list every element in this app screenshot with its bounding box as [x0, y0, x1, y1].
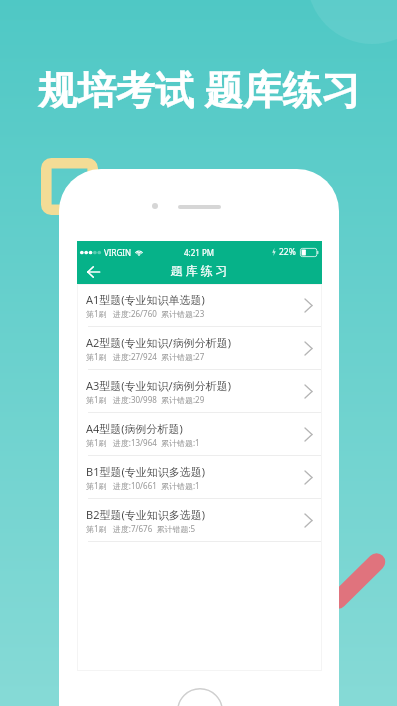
staticText: B1型题(专业知识多选题) [86, 464, 206, 479]
button[interactable]: B2型题(专业知识多选题) [77, 499, 322, 542]
staticText: A1型题(专业知识单选题) [86, 292, 205, 307]
button[interactable]: A1型题(专业知识单选题) [77, 284, 322, 327]
staticText: VIRGIN [104, 247, 132, 258]
staticText: B2型题(专业知识多选题) [86, 507, 206, 522]
button[interactable]: Back [83, 262, 103, 282]
staticText: A2型题(专业知识/病例分析题) [86, 335, 232, 350]
staticText: 第1刷 进度:7/676 累计错题:5 [86, 523, 196, 534]
staticText: 22% [279, 246, 296, 258]
button[interactable]: A3型题(专业知识/病例分析题) [77, 370, 322, 413]
button[interactable]: A4型题(病例分析题) [77, 413, 322, 456]
button[interactable]: A2型题(专业知识/病例分析题) [77, 327, 322, 370]
staticText: 第1刷 进度:30/998 累计错题:29 [86, 394, 205, 405]
staticText: 第1刷 进度:10/661 累计错题:1 [86, 480, 200, 491]
staticText: 第1刷 进度:27/924 累计错题:27 [86, 351, 205, 362]
staticText: A3型题(专业知识/病例分析题) [86, 378, 232, 393]
staticText: A4型题(病例分析题) [86, 421, 183, 436]
staticText: 4:21 PM [184, 247, 215, 258]
button[interactable]: B1型题(专业知识多选题) [77, 456, 322, 499]
staticText: 第1刷 进度:26/760 累计错题:23 [86, 308, 205, 319]
staticText: 题库练习 [169, 263, 229, 278]
staticText: 规培考试 题库练习 [38, 62, 361, 115]
staticText: 第1刷 进度:13/964 累计错题:1 [86, 437, 200, 448]
